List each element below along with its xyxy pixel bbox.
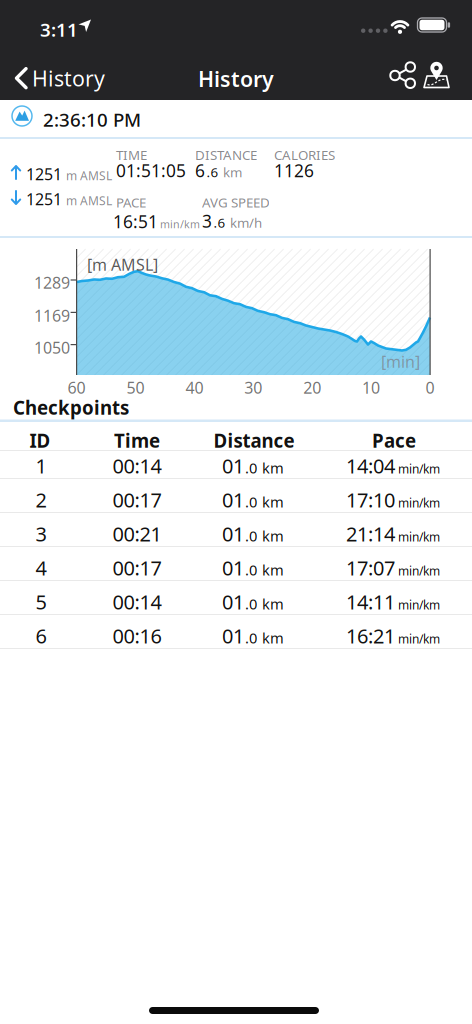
staticText: 30 bbox=[244, 377, 262, 398]
staticText: [min] bbox=[381, 351, 420, 372]
staticText: Pace bbox=[372, 428, 416, 453]
staticText: km bbox=[220, 163, 242, 181]
staticText: 10 bbox=[362, 377, 380, 398]
staticText: 50 bbox=[126, 377, 144, 398]
staticText: [m AMSL] bbox=[87, 254, 158, 275]
staticText: 3:11 bbox=[40, 17, 78, 42]
staticText: Distance bbox=[213, 428, 294, 453]
staticText: CALORIES bbox=[274, 146, 335, 164]
staticText: 01 bbox=[222, 588, 244, 615]
staticText: 1289 bbox=[34, 272, 70, 293]
staticText: 1 bbox=[35, 452, 46, 479]
button[interactable]: History bbox=[15, 64, 105, 92]
staticText: .0 bbox=[245, 458, 257, 478]
staticText: Time bbox=[114, 428, 160, 453]
staticText: 3 bbox=[202, 209, 212, 232]
staticText: 01:51:05 bbox=[116, 159, 186, 182]
staticText: .0 bbox=[245, 492, 257, 512]
staticText: 6 bbox=[195, 159, 205, 182]
staticText: 00:17 bbox=[112, 486, 161, 513]
staticText: km bbox=[258, 594, 284, 614]
staticText: 17:10 bbox=[346, 486, 395, 513]
staticText: .6 bbox=[213, 214, 225, 231]
staticText: m AMSL bbox=[66, 168, 112, 184]
staticText: 6 bbox=[35, 622, 46, 649]
staticText: 3 bbox=[35, 520, 46, 547]
staticText: 00:16 bbox=[112, 622, 161, 649]
staticText: 1251 bbox=[26, 163, 62, 185]
staticText: DISTANCE bbox=[195, 146, 257, 164]
staticText: min/km bbox=[398, 495, 440, 511]
staticText: 2:36:10 PM bbox=[43, 107, 141, 132]
staticText: .0 bbox=[245, 628, 257, 648]
staticText: km bbox=[258, 492, 284, 512]
staticText: 1126 bbox=[274, 159, 314, 182]
staticText: .6 bbox=[206, 163, 218, 181]
staticText: 01 bbox=[222, 452, 244, 479]
staticText: min/km bbox=[398, 529, 440, 545]
staticText: 14:04 bbox=[346, 452, 395, 479]
staticText: min/km bbox=[398, 597, 440, 613]
button[interactable]: Share bbox=[390, 62, 416, 88]
staticText: 01 bbox=[222, 622, 244, 649]
staticText: 16:21 bbox=[346, 622, 395, 649]
staticText: 16:51 bbox=[113, 210, 158, 233]
staticText: 00:14 bbox=[112, 588, 161, 615]
staticText: Checkpoints bbox=[13, 395, 129, 420]
staticText: .0 bbox=[245, 526, 257, 546]
staticText: min/km bbox=[398, 461, 440, 477]
staticText: 1169 bbox=[34, 305, 70, 326]
button[interactable]: Show on map bbox=[422, 61, 450, 89]
staticText: 20 bbox=[303, 377, 321, 398]
staticText: History bbox=[198, 64, 274, 93]
staticText: 17:07 bbox=[346, 554, 395, 581]
staticText: PACE bbox=[116, 193, 146, 211]
staticText: km/h bbox=[227, 214, 262, 231]
staticText: km bbox=[258, 526, 284, 546]
staticText: km bbox=[258, 560, 284, 580]
staticText: TIME bbox=[116, 146, 147, 164]
staticText: 01 bbox=[222, 554, 244, 581]
staticText: km bbox=[258, 458, 284, 478]
staticText: 00:17 bbox=[112, 554, 161, 581]
staticText: AVG SPEED bbox=[202, 193, 270, 211]
staticText: 5 bbox=[35, 588, 46, 615]
staticText: 21:14 bbox=[346, 520, 395, 547]
staticText: .0 bbox=[245, 560, 257, 580]
staticText: km bbox=[258, 628, 284, 648]
staticText: 2 bbox=[35, 486, 46, 513]
staticText: 01 bbox=[222, 486, 244, 513]
staticText: 00:14 bbox=[112, 452, 161, 479]
staticText: 00:21 bbox=[112, 520, 161, 547]
staticText: .0 bbox=[245, 594, 257, 614]
staticText: 4 bbox=[35, 554, 46, 581]
staticText: 14:11 bbox=[346, 588, 395, 615]
staticText: History bbox=[32, 64, 105, 92]
staticText: 0 bbox=[425, 377, 434, 398]
staticText: min/km bbox=[160, 217, 200, 231]
staticText: 40 bbox=[185, 377, 203, 398]
staticText: m AMSL bbox=[66, 193, 112, 209]
staticText: 60 bbox=[68, 377, 86, 398]
staticText: ID bbox=[29, 428, 50, 453]
staticText: 01 bbox=[222, 520, 244, 547]
staticText: min/km bbox=[398, 631, 440, 647]
staticText: min/km bbox=[398, 563, 440, 579]
staticText: 1251 bbox=[26, 188, 62, 210]
staticText: 1050 bbox=[34, 337, 70, 358]
